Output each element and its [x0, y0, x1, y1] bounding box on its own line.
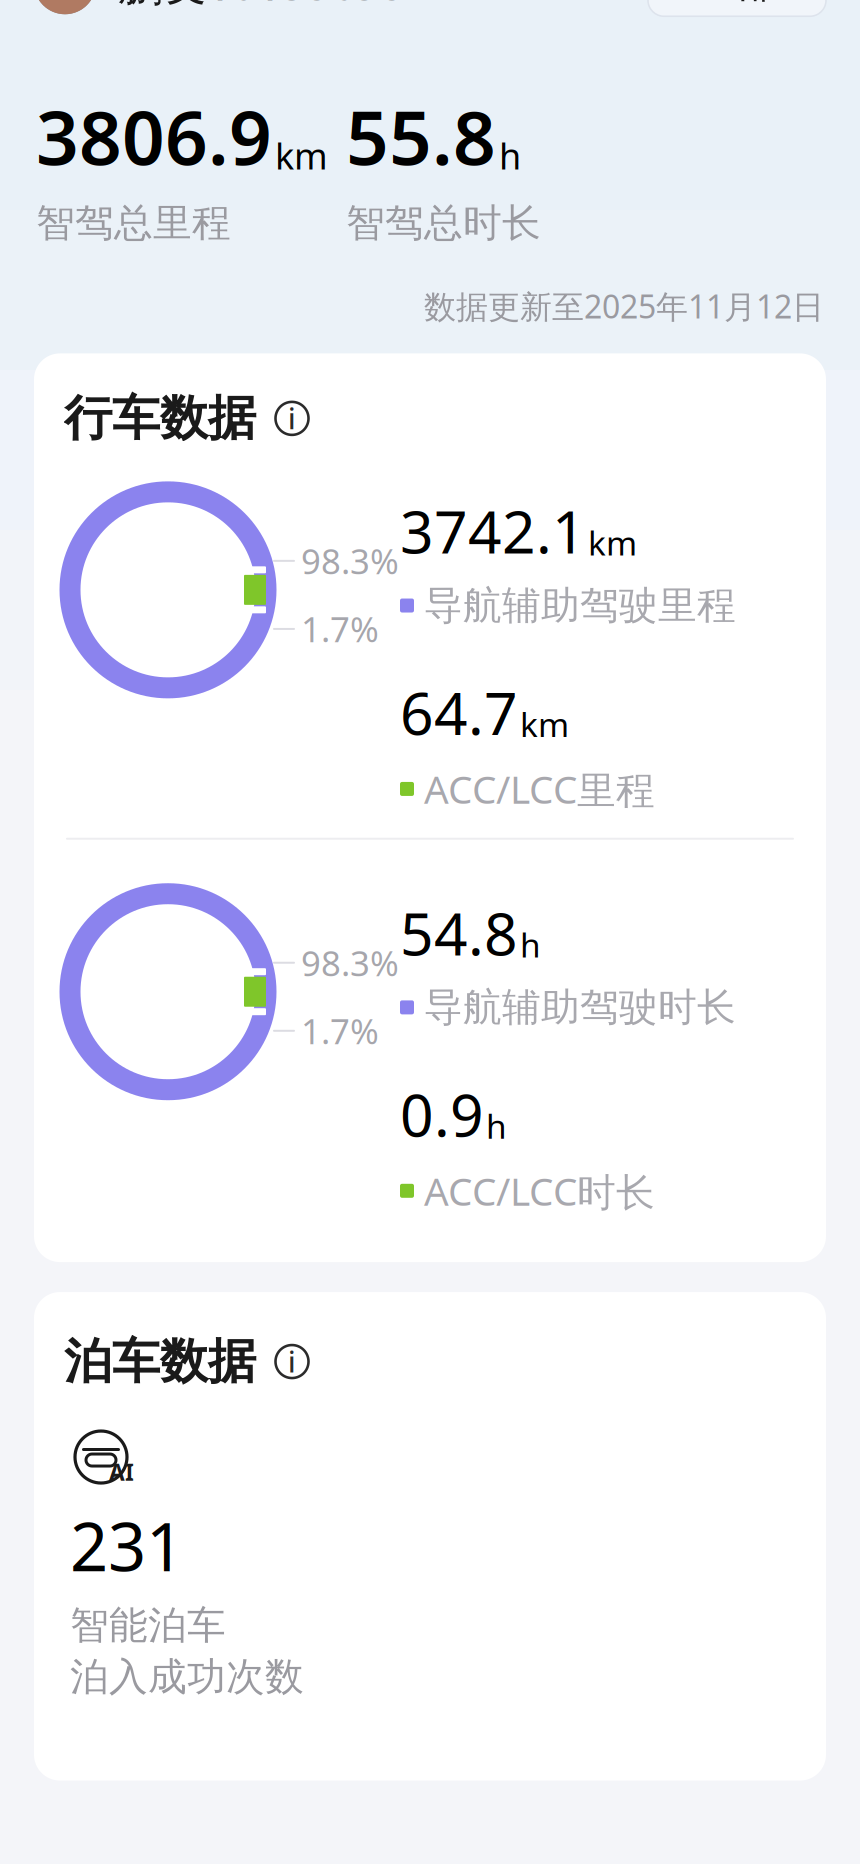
- staticText: 231: [70, 1501, 184, 1589]
- staticText: 泊车数据: [64, 1332, 256, 1391]
- staticText: h: [486, 1104, 507, 1148]
- staticText: 64.7: [400, 673, 518, 751]
- staticText: km: [275, 132, 328, 179]
- staticText: km: [588, 520, 637, 565]
- staticText: 智能泊车: [70, 1602, 226, 1649]
- staticText: i: [288, 1343, 296, 1380]
- staticText: h: [520, 922, 541, 967]
- staticText: 54.8: [400, 894, 518, 972]
- staticText: 鹏友10135695: [118, 0, 406, 12]
- staticText: AI: [109, 1457, 134, 1487]
- staticText: 泊入成功次数: [70, 1653, 304, 1701]
- staticText: 数据更新至2025年11月12日: [424, 285, 824, 327]
- staticText: i: [288, 400, 296, 437]
- staticText: 0.9: [400, 1075, 484, 1153]
- staticText: 行车数据: [64, 389, 256, 448]
- button[interactable]: 泊车数据说明: [270, 1340, 314, 1384]
- staticText: 3806.9: [36, 86, 272, 185]
- staticText: h: [499, 132, 521, 179]
- button[interactable]: 全部: [648, 0, 826, 16]
- staticText: 智驾总里程: [36, 199, 231, 247]
- staticText: 3742.1: [400, 492, 586, 570]
- staticText: 导航辅助驾驶里程: [424, 582, 736, 629]
- staticText: ACC/LCC里程: [424, 763, 655, 815]
- staticText: 1.7%: [301, 606, 379, 652]
- button[interactable]: 鹏友10135695: [34, 0, 406, 14]
- staticText: 98.3%: [301, 940, 399, 986]
- staticText: 55.8: [346, 86, 496, 185]
- staticText: km: [520, 702, 569, 746]
- staticText: 智驾总时长: [346, 199, 541, 247]
- staticText: 98.3%: [301, 538, 399, 584]
- staticText: 1.7%: [301, 1008, 379, 1054]
- staticText: 导航辅助驾驶时长: [424, 984, 736, 1031]
- staticText: ACC/LCC时长: [424, 1165, 655, 1216]
- button[interactable]: 行车数据说明: [270, 396, 314, 440]
- staticText: 全部: [697, 0, 777, 8]
